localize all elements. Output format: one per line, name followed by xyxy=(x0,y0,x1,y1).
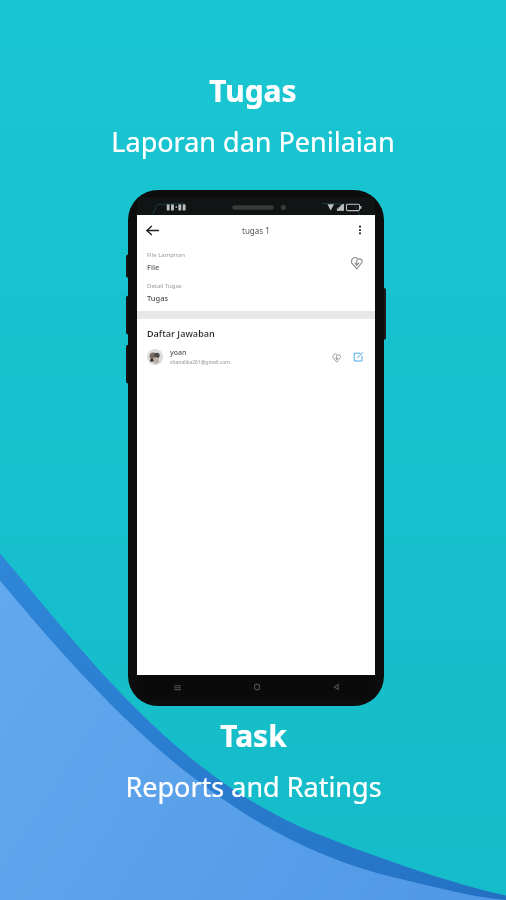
staticText: Daftar Jawaban xyxy=(147,327,215,339)
button[interactable]: Recent apps xyxy=(137,675,217,699)
staticText: Task xyxy=(220,715,287,756)
staticText: Tugas xyxy=(147,293,169,303)
button[interactable]: yoan xyxy=(137,346,375,368)
button[interactable]: Download answer xyxy=(327,348,345,366)
button[interactable]: Home xyxy=(217,675,296,699)
staticText: tugas 1 xyxy=(242,225,270,236)
staticText: yoan xyxy=(170,348,187,358)
staticText: File Lampiran xyxy=(147,251,185,259)
staticText: Laporan dan Penilaian xyxy=(111,123,395,160)
button[interactable]: Back xyxy=(296,675,375,699)
button[interactable]: Back xyxy=(137,215,167,245)
button[interactable]: Download attachment xyxy=(345,251,367,273)
button[interactable]: Grade answer xyxy=(349,348,367,366)
staticText: Detail Tugas xyxy=(147,282,182,290)
staticText: shanalika261@gmail.com. xyxy=(170,359,232,366)
button[interactable]: More options xyxy=(345,215,375,245)
staticText: File xyxy=(147,262,160,272)
staticText: Tugas xyxy=(209,70,297,111)
staticText: Reports and Ratings xyxy=(125,768,382,805)
